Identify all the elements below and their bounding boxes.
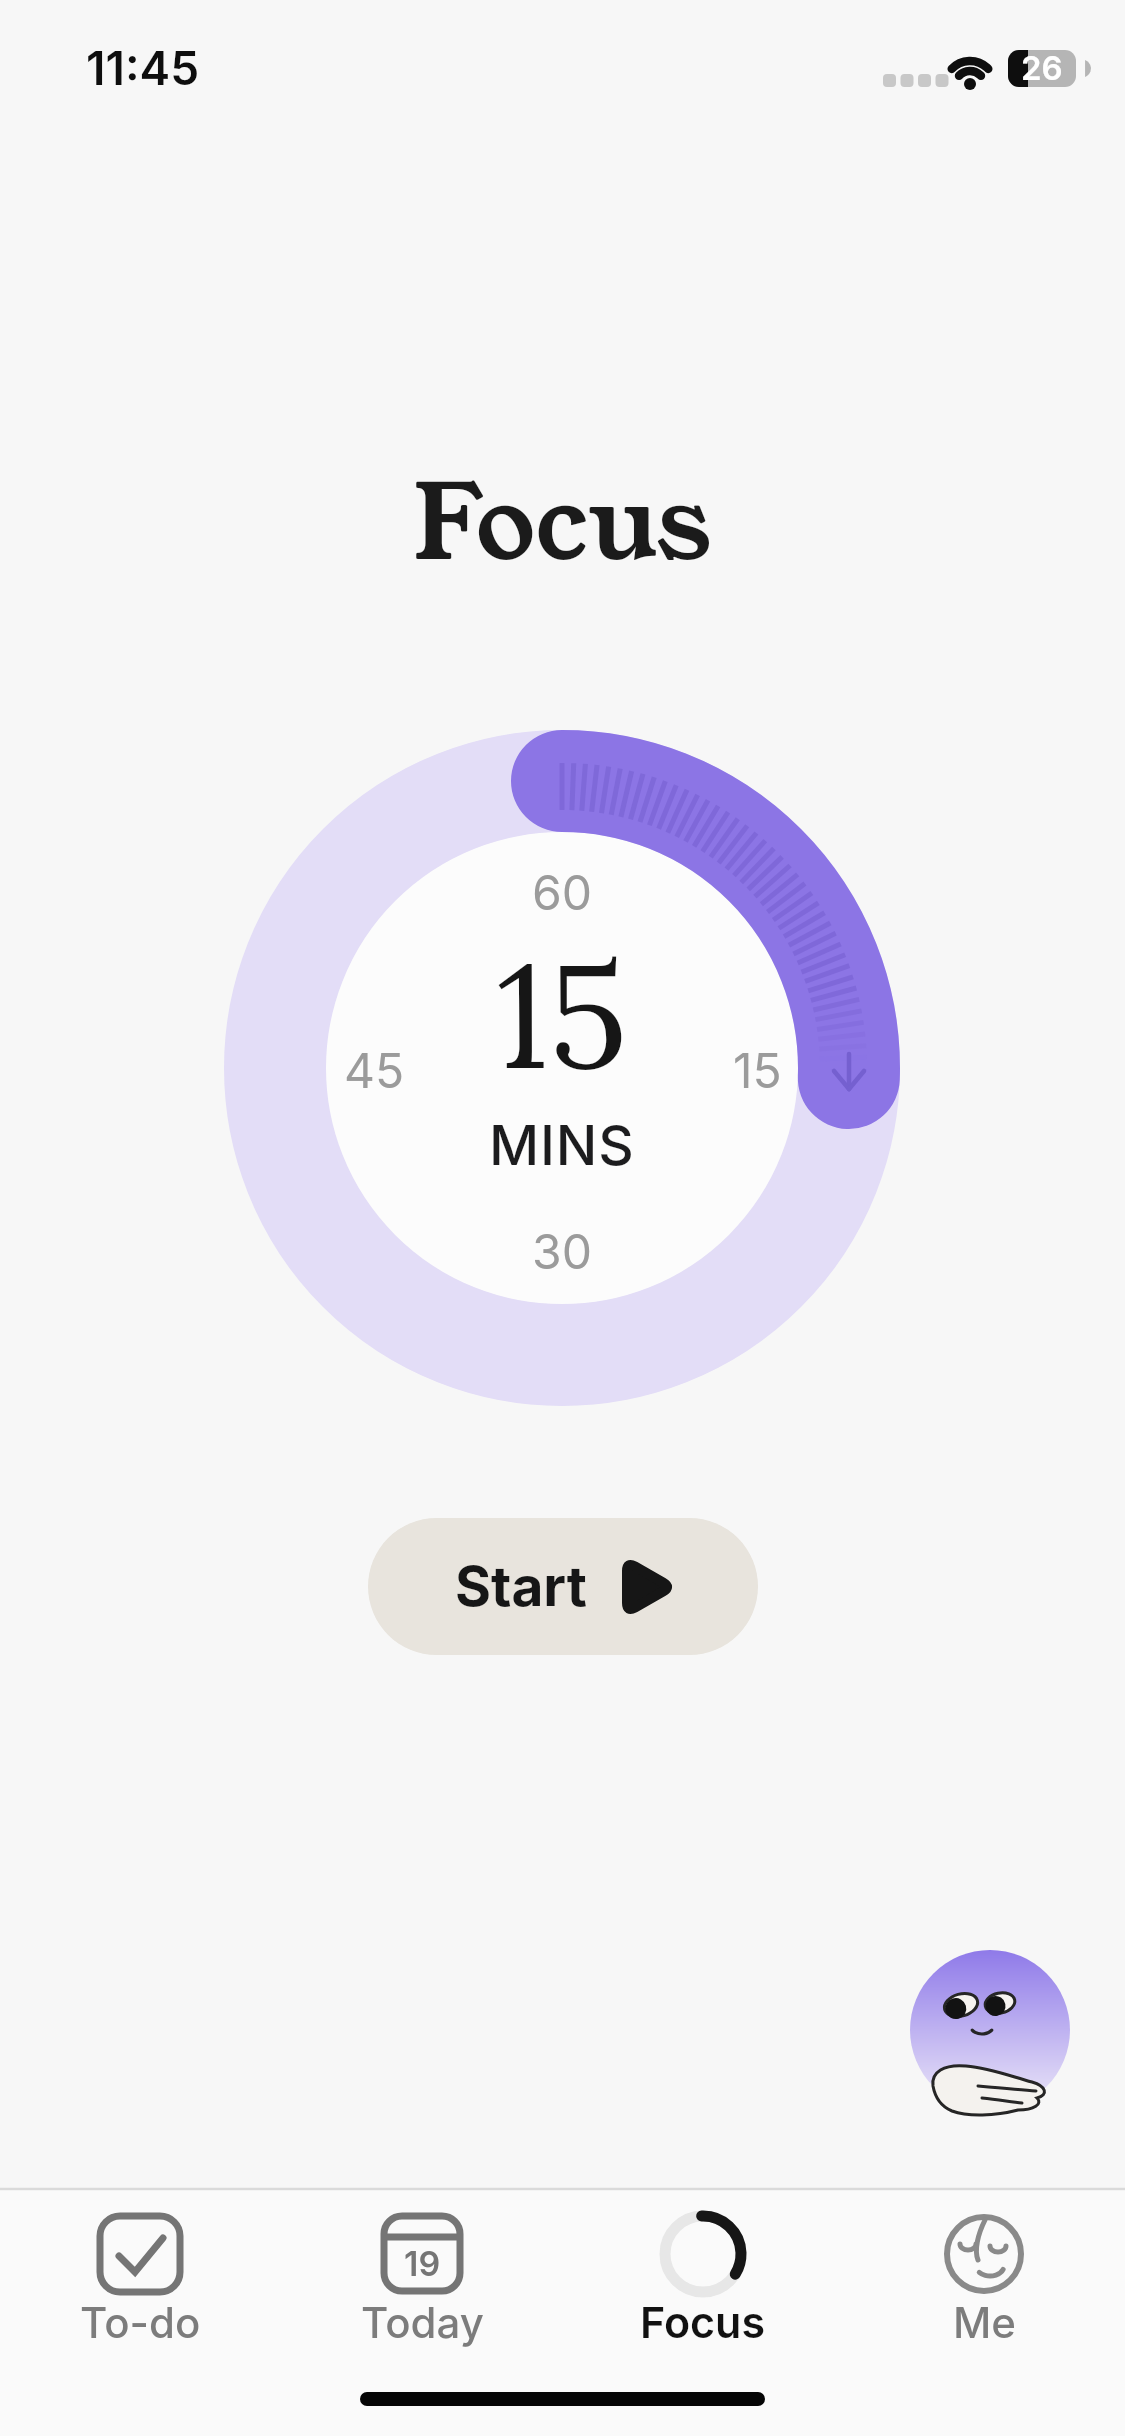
staticText: Focus [640,2296,766,2348]
staticText: 15 [733,1041,782,1099]
staticText: 19 [404,2243,441,2284]
staticText: Focus [413,450,712,597]
staticText: MINS [489,1112,635,1179]
staticText: 15 [496,922,628,1108]
staticText: Start [455,1553,587,1620]
staticText: 60 [532,863,593,921]
staticText: Today [361,2297,484,2348]
staticText: To-do [80,2297,201,2348]
staticText: 30 [532,1222,592,1280]
staticText: Me [953,2297,1016,2348]
staticText: 26 [1021,48,1063,88]
staticText: 11:45 [86,40,200,96]
staticText: 45 [344,1041,405,1099]
